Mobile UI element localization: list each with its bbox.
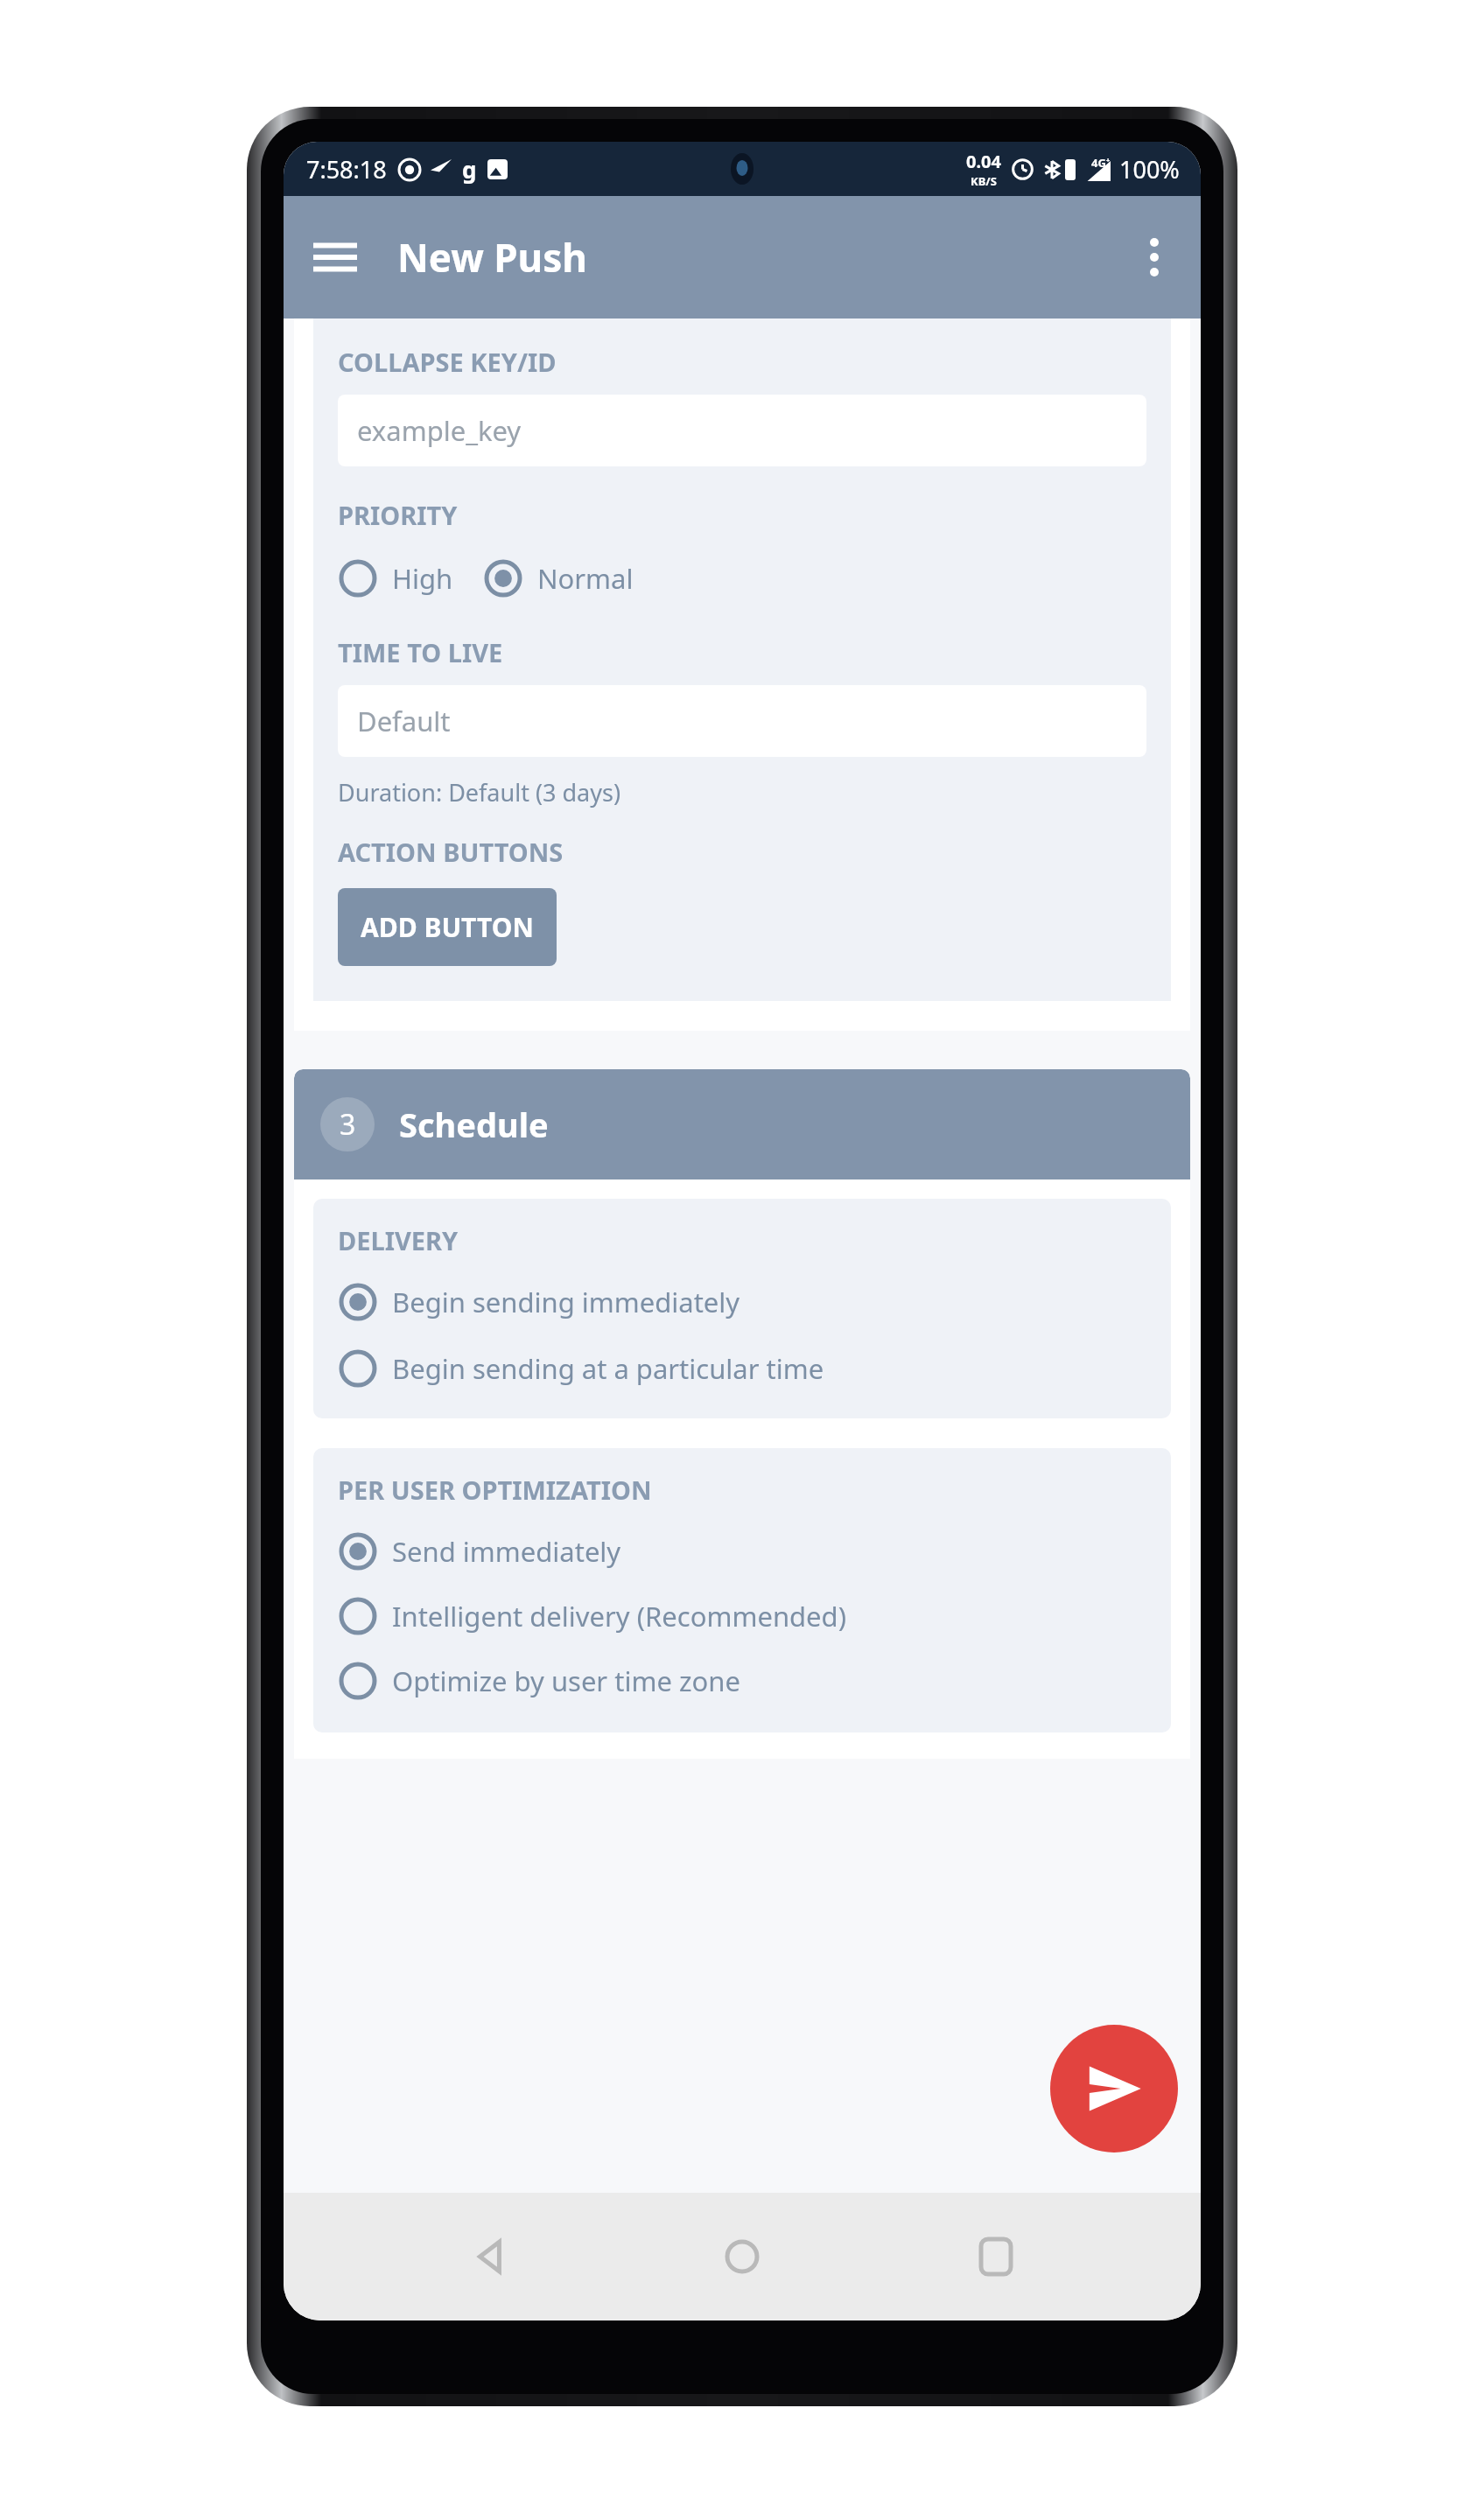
- staticText: 100%: [1119, 153, 1180, 185]
- staticText: TIME TO LIVE: [338, 635, 503, 669]
- staticText: High: [392, 560, 453, 597]
- staticText: Begin sending immediately: [392, 1284, 740, 1320]
- button[interactable]: Send immediately: [338, 1526, 1146, 1577]
- staticText: Normal: [537, 560, 634, 597]
- staticText: New Push: [397, 231, 587, 283]
- button[interactable]: 3: [294, 1069, 1190, 1179]
- button[interactable]: High: [338, 553, 453, 604]
- button[interactable]: More options: [1117, 220, 1192, 295]
- staticText: ADD BUTTON: [361, 909, 534, 945]
- button[interactable]: Open navigation menu: [298, 220, 373, 295]
- button[interactable]: Begin sending immediately: [338, 1277, 1146, 1327]
- button[interactable]: Default: [338, 685, 1146, 757]
- button[interactable]: Begin sending at a particular time: [338, 1343, 1146, 1394]
- button[interactable]: Intelligent delivery (Recommended): [338, 1591, 1146, 1641]
- button[interactable]: ADD BUTTON: [338, 888, 557, 966]
- button[interactable]: Send push: [1050, 2025, 1178, 2152]
- staticText: KB/S: [971, 173, 997, 189]
- staticText: example_key: [357, 412, 522, 449]
- button[interactable]: Recent apps: [948, 2208, 1044, 2305]
- staticText: Schedule: [399, 1102, 549, 1147]
- button[interactable]: Home: [694, 2208, 790, 2305]
- staticText: 7:58:18: [306, 153, 387, 185]
- staticText: g: [462, 154, 477, 185]
- staticText: ACTION BUTTONS: [338, 835, 564, 869]
- button[interactable]: Back: [441, 2208, 537, 2305]
- staticText: 3: [340, 1105, 356, 1144]
- staticText: Begin sending at a particular time: [392, 1350, 824, 1387]
- staticText: Intelligent delivery (Recommended): [392, 1598, 846, 1634]
- button[interactable]: Normal: [483, 553, 634, 604]
- staticText: DELIVERY: [338, 1223, 459, 1257]
- button[interactable]: Optimize by user time zone: [338, 1655, 1146, 1706]
- staticText: Optimize by user time zone: [392, 1662, 740, 1699]
- staticText: Duration: Default (3 days): [338, 776, 621, 808]
- button[interactable]: example_key: [338, 395, 1146, 466]
- staticText: Default: [357, 703, 451, 739]
- staticText: 4G⁺: [1091, 155, 1111, 171]
- staticText: PER USER OPTIMIZATION: [338, 1473, 652, 1507]
- staticText: COLLAPSE KEY/ID: [338, 345, 557, 379]
- staticText: PRIORITY: [338, 498, 458, 532]
- staticText: 0.04: [966, 150, 1001, 173]
- staticText: Send immediately: [392, 1533, 621, 1570]
